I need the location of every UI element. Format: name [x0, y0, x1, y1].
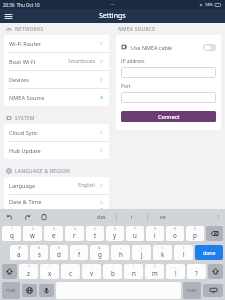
staticText: $ — [58, 246, 60, 250]
staticText: - — [120, 246, 122, 250]
button[interactable]: NMEA Source — [4, 89, 109, 106]
staticText: k — [161, 250, 165, 258]
staticText: u — [133, 231, 137, 239]
button[interactable]: 1 — [2, 226, 21, 241]
button[interactable]: ; — [103, 264, 122, 279]
staticText: 9 — [174, 227, 176, 231]
staticText: NMEA Source — [9, 94, 45, 102]
staticText: l — [183, 250, 185, 258]
button[interactable]: 8 — [146, 226, 164, 241]
staticText: ••• — [110, 2, 115, 7]
staticText: NETWORKS — [15, 26, 44, 33]
button[interactable]: Devices — [4, 71, 109, 88]
button[interactable]: Date & Time — [4, 195, 109, 209]
staticText: ! — [175, 269, 177, 277]
staticText: . — [196, 265, 197, 269]
button[interactable]: Connect — [121, 111, 216, 122]
staticText: 2 — [32, 227, 34, 231]
staticText: e — [52, 231, 56, 239]
button[interactable]: 6 — [106, 226, 124, 241]
button[interactable]: i — [117, 213, 147, 220]
staticText: i — [131, 213, 133, 220]
button[interactable]: Backspace — [206, 226, 223, 241]
staticText: ? — [195, 269, 198, 277]
button[interactable]: 5 — [86, 226, 104, 241]
button[interactable]: * — [19, 264, 38, 279]
button[interactable] — [121, 92, 216, 103]
button[interactable]: ) — [174, 245, 193, 260]
button[interactable]: ? — [145, 264, 164, 279]
button[interactable]: ! — [124, 264, 143, 279]
staticText: * — [28, 265, 30, 269]
button[interactable]: # — [30, 245, 48, 260]
staticText: b — [111, 269, 115, 277]
button[interactable] — [121, 67, 216, 78]
staticText: 4 — [74, 227, 76, 231]
button[interactable]: . — [187, 264, 206, 279]
staticText: ?123 — [6, 288, 16, 294]
staticText: ! — [133, 265, 134, 269]
button[interactable]: ( — [153, 245, 172, 260]
staticText: q — [10, 231, 14, 239]
button[interactable]: das — [86, 213, 116, 220]
button[interactable]: @ — [10, 245, 28, 260]
button[interactable]: Open navigation menu — [2, 10, 14, 22]
button[interactable]: Change keyboard — [22, 284, 37, 297]
staticText: 5 — [94, 227, 96, 231]
button[interactable]: $ — [50, 245, 68, 260]
staticText: Use NMEA cable — [131, 44, 173, 51]
button[interactable]: 2 — [23, 226, 42, 241]
button[interactable]: 4 — [65, 226, 84, 241]
button[interactable]: ve — [148, 213, 178, 220]
staticText: " — [49, 265, 51, 269]
button[interactable]: ' — [61, 264, 80, 279]
button[interactable]: , — [166, 264, 185, 279]
staticText: IP address — [121, 58, 145, 65]
button[interactable]: & — [90, 245, 109, 260]
staticText: ) — [183, 246, 184, 250]
button[interactable]: 0 — [186, 226, 204, 241]
button[interactable]: Redo — [22, 212, 32, 222]
button[interactable]: Wi-Fi Router — [4, 35, 109, 52]
staticText: 0 — [194, 227, 196, 231]
staticText: 6 — [114, 227, 116, 231]
button[interactable]: + — [132, 245, 151, 260]
button[interactable]: Hide keyboard — [203, 284, 223, 297]
button[interactable]: 3 — [44, 226, 63, 241]
staticText: SYSTEM — [15, 115, 35, 122]
staticText: English — [78, 182, 96, 189]
button[interactable]: Undo — [5, 212, 15, 222]
button[interactable]: Shift — [2, 264, 17, 279]
staticText: f — [78, 250, 81, 258]
button[interactable]: _ — [70, 245, 88, 260]
staticText: 20:36 Thu Oct 10 — [3, 2, 40, 8]
button[interactable]: Shift — [208, 264, 223, 279]
button[interactable]: Cloud Sync — [4, 124, 109, 141]
button[interactable]: Voice input — [39, 284, 54, 297]
staticText: y — [113, 231, 117, 239]
button[interactable]: Paste — [39, 212, 49, 222]
button[interactable]: - — [111, 245, 130, 260]
staticText: p — [193, 231, 197, 239]
staticText: @ — [18, 246, 21, 250]
staticText: : — [91, 265, 92, 269]
staticText: Date & Time — [9, 198, 42, 206]
button[interactable]: Use NMEA cable — [121, 41, 216, 53]
button[interactable]: 7 — [126, 226, 144, 241]
staticText: + — [141, 246, 143, 250]
staticText: 3 — [53, 227, 55, 231]
button[interactable]: 9 — [166, 226, 184, 241]
staticText: z — [27, 269, 30, 277]
button[interactable]: ?123 — [183, 282, 201, 299]
button[interactable]: Language — [4, 177, 109, 194]
button[interactable]: Boat Wi-Fi — [4, 53, 109, 70]
button[interactable]: done — [195, 245, 223, 260]
button[interactable]: " — [40, 264, 59, 279]
button[interactable]: Hub Update — [4, 142, 109, 159]
button[interactable]: ?123 — [2, 282, 20, 299]
staticText: 1 — [11, 227, 13, 231]
staticText: d — [57, 250, 61, 258]
button[interactable]: : — [82, 264, 101, 279]
staticText: c — [69, 269, 72, 277]
